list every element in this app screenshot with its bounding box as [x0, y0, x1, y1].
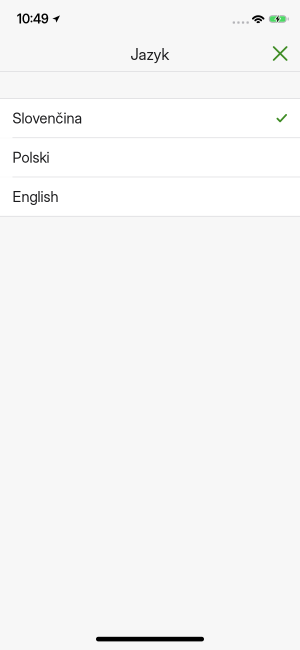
button[interactable]: English	[0, 178, 300, 216]
button[interactable]: Polski	[0, 138, 300, 177]
button[interactable]: Close	[261, 40, 300, 69]
staticText: English	[12, 188, 58, 206]
button[interactable]: Slovenčina	[0, 99, 300, 137]
staticText: Slovenčina	[12, 109, 82, 127]
staticText: Polski	[12, 149, 49, 166]
staticText: 10:49	[17, 11, 49, 27]
staticText: Jazyk	[130, 45, 169, 64]
